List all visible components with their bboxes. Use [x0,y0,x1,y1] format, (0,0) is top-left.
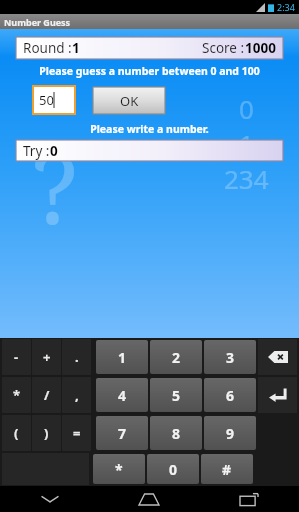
button[interactable]: ( [2,415,31,451]
staticText: 1000 [245,39,276,57]
staticText: 2 [172,348,181,367]
staticText: * [115,460,123,479]
staticText: 4 [118,386,127,405]
button[interactable]: 1 [96,340,148,374]
button[interactable]: Backspace [258,339,297,375]
button[interactable]: Home [99,486,199,512]
staticText: ) [44,424,49,442]
staticText: 1 [72,39,80,57]
button[interactable]: OK [93,87,165,114]
staticText: , [75,386,79,404]
staticText: . [75,348,79,366]
staticText: 9 [226,424,235,443]
staticText: 6 [226,386,235,405]
staticText: 1 [239,126,254,161]
button[interactable]: ) [32,415,61,451]
staticText: Please write a number. [0,122,299,136]
staticText: OK [120,92,139,110]
button[interactable]: + [32,339,61,375]
button[interactable]: - [2,339,31,375]
staticText: 8 [172,424,181,443]
staticText: 234 [224,161,269,196]
staticText: 0 [239,91,254,126]
staticText: Score : [202,39,245,57]
button[interactable]: Enter [258,377,297,413]
button[interactable]: 8 [150,416,202,450]
button[interactable]: , [62,377,91,413]
staticText: Round : [23,39,72,57]
button[interactable]: Recent apps [199,486,299,512]
staticText: ( [14,424,19,442]
staticText: 2:34 [277,1,295,13]
button[interactable]: 6 [204,378,256,412]
staticText: 3 [226,348,235,367]
button[interactable]: * [93,454,145,484]
button[interactable]: 9 [204,416,256,450]
staticText: * [13,386,21,404]
button[interactable]: # [201,454,253,484]
button[interactable]: . [62,339,91,375]
staticText: 7 [118,424,127,443]
button[interactable]: 7 [96,416,148,450]
staticText: - [14,348,19,366]
staticText: 1 [118,348,127,367]
staticText: # [222,460,232,479]
button[interactable]: = [62,415,91,451]
staticText: 0 [50,142,58,160]
staticText: Number Guess [4,16,71,28]
staticText: Please guess a number between 0 and 100 [0,64,299,78]
staticText: = [73,424,81,442]
staticText: 50 [39,91,54,109]
button[interactable]: 3 [204,340,256,374]
staticText: 0 [169,460,178,479]
staticText: / [44,386,50,404]
button[interactable]: * [2,377,31,413]
button[interactable]: 4 [96,378,148,412]
staticText: + [43,348,51,366]
button[interactable]: 50 [34,87,74,113]
staticText: Try : [23,142,50,160]
button[interactable]: 0 [147,454,199,484]
staticText: 5 [172,386,181,405]
button[interactable]: Hide keyboard [0,486,99,512]
button[interactable]: 2 [150,340,202,374]
button[interactable]: 5 [150,378,202,412]
staticText: ? [32,121,78,252]
button[interactable]: / [32,377,61,413]
